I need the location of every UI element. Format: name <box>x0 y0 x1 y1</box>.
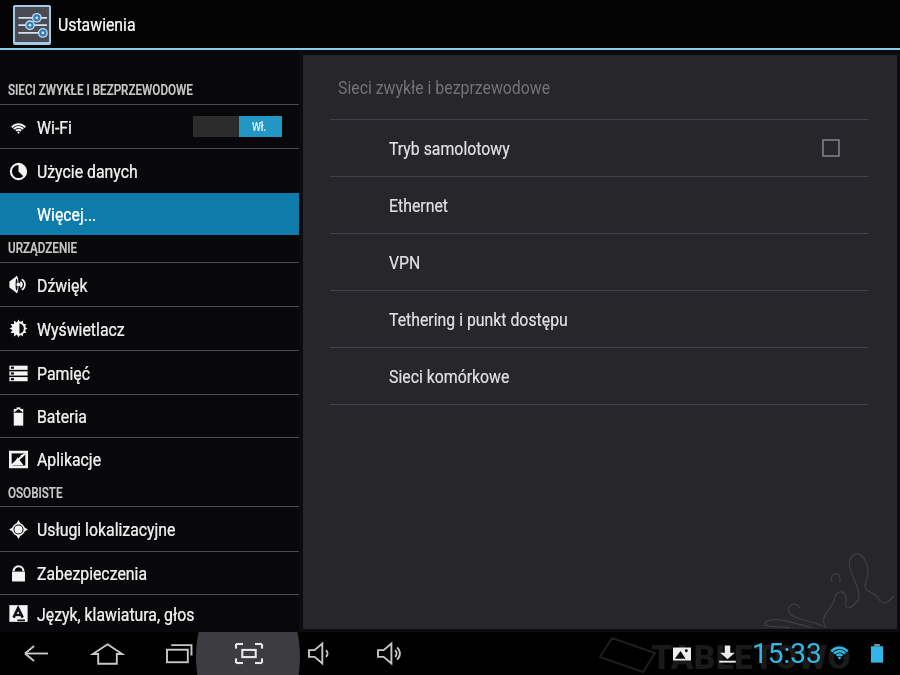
button[interactable]: Usługi lokalizacyjne <box>0 507 299 551</box>
button[interactable]: Volume down <box>284 632 354 675</box>
button[interactable]: Zabezpieczenia <box>0 552 299 594</box>
staticText: Zabezpieczenia <box>37 562 147 584</box>
staticText: URZĄDZENIE <box>8 240 77 256</box>
button[interactable]: Bateria <box>0 395 299 437</box>
button[interactable]: Tethering i punkt dostępu <box>303 291 897 347</box>
staticText: Dźwięk <box>37 274 88 296</box>
staticText: Wł. <box>252 120 267 134</box>
staticText: Wi-Fi <box>37 116 72 138</box>
staticText: Pamięć <box>37 362 90 384</box>
staticText: Ustawienia <box>58 13 136 35</box>
staticText: Aplikacje <box>37 448 101 470</box>
staticText: Sieci komórkowe <box>389 365 510 387</box>
staticText: Usługi lokalizacyjne <box>37 518 176 540</box>
button[interactable]: Home <box>71 632 143 675</box>
staticText: Język, klawiatura, głos <box>37 603 194 625</box>
staticText: SIECI ZWYKŁE I BEZPRZEWODOWE <box>8 82 193 98</box>
button[interactable]: Wi-Fi <box>0 105 299 148</box>
staticText: 15:33 <box>752 637 822 670</box>
staticText: TABLETOWO <box>651 637 851 675</box>
button[interactable]: Recent apps <box>143 632 214 675</box>
button[interactable]: Język, klawiatura, głos <box>0 595 299 632</box>
staticText: Tethering i punkt dostępu <box>389 308 568 330</box>
staticText: Ethernet <box>389 194 448 216</box>
button[interactable]: Wyświetlacz <box>0 307 299 350</box>
staticText: VPN <box>389 251 421 273</box>
button[interactable]: Zrzut ekranu <box>673 645 691 663</box>
button[interactable]: Użycie danych <box>0 149 299 193</box>
button[interactable]: Pobieranie <box>716 644 739 663</box>
button[interactable]: Aplikacje <box>0 438 299 480</box>
staticText: Więcej... <box>37 203 97 225</box>
staticText: Bateria <box>37 405 87 427</box>
button[interactable]: Tryb samolotowy <box>823 140 839 156</box>
button[interactable]: Wi-Fi włączone <box>193 116 282 137</box>
button[interactable]: VPN <box>303 234 897 290</box>
staticText: Tryb samolotowy <box>389 137 510 159</box>
button[interactable]: Tryb samolotowy <box>303 120 897 176</box>
button[interactable]: Więcej... <box>0 193 299 235</box>
button[interactable]: Screenshot <box>214 632 284 675</box>
staticText: OSOBISTE <box>8 485 63 501</box>
button[interactable]: Volume up <box>354 632 424 675</box>
button[interactable]: Pamięć <box>0 351 299 394</box>
staticText: Użycie danych <box>37 160 138 182</box>
staticText: Sieci zwykłe i bezprzewodowe <box>338 76 550 98</box>
button[interactable]: Dźwięk <box>0 263 299 306</box>
button[interactable]: Sieci komórkowe <box>303 348 897 404</box>
button[interactable]: Back <box>0 632 71 675</box>
staticText: Wyświetlacz <box>37 318 125 340</box>
button[interactable]: Ethernet <box>303 177 897 233</box>
